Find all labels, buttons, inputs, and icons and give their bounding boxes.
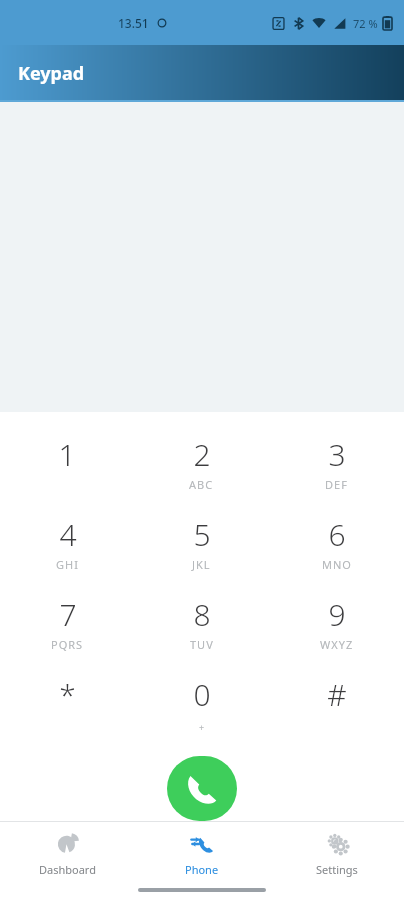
button[interactable]: * bbox=[0, 666, 134, 746]
staticText: 72 % bbox=[353, 16, 378, 31]
staticText: 7 bbox=[59, 594, 77, 635]
staticText: 2 bbox=[193, 434, 211, 475]
staticText: 3 bbox=[328, 434, 346, 475]
staticText: TUV bbox=[190, 637, 214, 652]
staticText: 1 bbox=[58, 434, 76, 475]
staticText: 4 bbox=[59, 514, 77, 555]
button[interactable]: 5 bbox=[134, 506, 269, 586]
staticText: JKL bbox=[192, 557, 211, 572]
staticText: Phone bbox=[185, 862, 219, 877]
staticText: 0 bbox=[193, 674, 211, 715]
staticText: 13.51 bbox=[118, 15, 149, 31]
staticText: * bbox=[59, 674, 76, 715]
button[interactable]: 3 bbox=[269, 426, 404, 506]
staticText: DEF bbox=[325, 477, 348, 492]
button[interactable]: 2 bbox=[134, 426, 269, 506]
button[interactable]: 4 bbox=[0, 506, 134, 586]
staticText: 6 bbox=[328, 514, 346, 555]
button[interactable]: 8 bbox=[134, 586, 269, 666]
button[interactable]: Call bbox=[167, 756, 237, 821]
staticText: ABC bbox=[189, 477, 214, 492]
staticText: Settings bbox=[316, 862, 358, 877]
staticText: 9 bbox=[328, 594, 346, 635]
button[interactable]: Dashboard bbox=[0, 822, 134, 888]
button[interactable]: 7 bbox=[0, 586, 134, 666]
staticText: # bbox=[327, 674, 347, 715]
staticText: Keypad bbox=[18, 61, 85, 86]
staticText: GHI bbox=[56, 557, 79, 572]
button[interactable]: 6 bbox=[269, 506, 404, 586]
staticText: PQRS bbox=[51, 637, 84, 652]
button[interactable]: # bbox=[269, 666, 404, 746]
button[interactable]: 9 bbox=[269, 586, 404, 666]
staticText: 5 bbox=[193, 514, 211, 555]
staticText: MNO bbox=[322, 557, 352, 572]
staticText: Dashboard bbox=[39, 862, 96, 877]
button[interactable]: Phone bbox=[134, 822, 269, 888]
staticText: + bbox=[199, 721, 206, 733]
button[interactable]: Settings bbox=[269, 822, 404, 888]
staticText: 8 bbox=[193, 594, 211, 635]
button[interactable]: 1 bbox=[0, 426, 134, 506]
staticText: WXYZ bbox=[320, 637, 354, 652]
button[interactable]: 0 bbox=[134, 666, 269, 746]
